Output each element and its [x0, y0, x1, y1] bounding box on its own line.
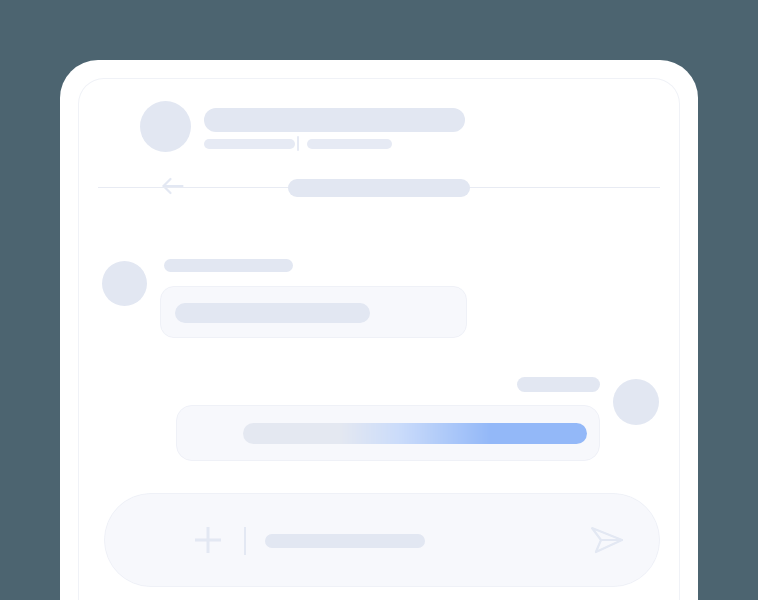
button[interactable]: Attach	[188, 520, 228, 560]
button[interactable]	[176, 405, 600, 461]
button[interactable]	[140, 101, 560, 159]
button[interactable]: Back	[153, 166, 193, 206]
button[interactable]	[160, 286, 467, 338]
button[interactable]: Send	[587, 520, 627, 560]
button[interactable]	[258, 517, 638, 565]
